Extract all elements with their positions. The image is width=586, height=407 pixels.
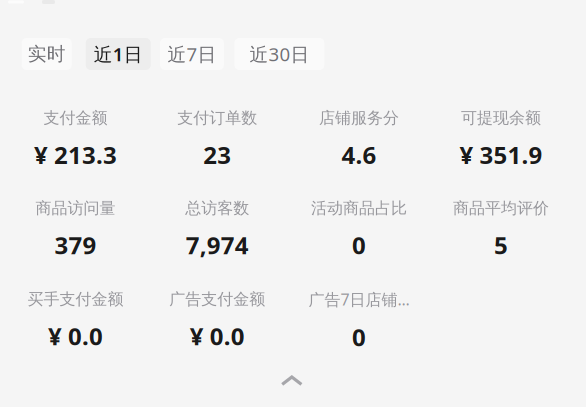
staticText: 实时	[28, 42, 66, 65]
button[interactable]: 商品平均评价	[430, 198, 572, 261]
staticText: 广告支付金额	[169, 289, 265, 309]
staticText: 商品平均评价	[453, 198, 549, 218]
staticText: ¥ 213.3	[34, 139, 117, 171]
button[interactable]: 买手支付金额	[5, 289, 146, 352]
button[interactable]: 商品访问量	[5, 198, 146, 261]
button[interactable]: 广告7日店铺...	[288, 289, 430, 353]
staticText: 近1日	[94, 42, 143, 66]
staticText: 0	[352, 321, 366, 353]
staticText: 商品访问量	[35, 198, 115, 218]
button[interactable]: 近1日	[86, 38, 151, 70]
staticText: 5	[494, 229, 508, 261]
staticText: 店铺服务分	[319, 108, 399, 128]
staticText: 买手支付金额	[27, 289, 123, 309]
button[interactable]: 支付金额	[5, 108, 146, 170]
staticText: 4.6	[342, 139, 377, 171]
staticText: 支付订单数	[177, 108, 257, 128]
button[interactable]: 支付订单数	[146, 108, 288, 170]
button[interactable]: Collapse	[272, 366, 312, 395]
button[interactable]: 店铺服务分	[288, 108, 430, 170]
staticText: 0	[352, 229, 366, 261]
staticText: 近30日	[249, 42, 309, 66]
button[interactable]: 总访客数	[146, 198, 288, 261]
staticText: 7,974	[186, 229, 249, 261]
button[interactable]: 活动商品占比	[288, 198, 430, 261]
staticText: 379	[54, 229, 96, 261]
staticText: ¥ 0.0	[48, 320, 103, 352]
staticText: 广告7日店铺...	[309, 289, 410, 310]
button[interactable]: 广告支付金额	[146, 289, 288, 352]
button[interactable]: 可提现余额	[430, 108, 572, 170]
staticText: 活动商品占比	[311, 198, 407, 218]
staticText: 可提现余额	[461, 108, 541, 128]
staticText: 近7日	[167, 42, 216, 66]
button[interactable]: 近7日	[160, 38, 224, 70]
staticText: 支付金额	[43, 108, 107, 128]
button[interactable]: 近30日	[234, 38, 324, 70]
button[interactable]: 实时	[22, 38, 72, 70]
staticText: ¥ 0.0	[190, 320, 245, 352]
staticText: ¥ 351.9	[459, 139, 542, 171]
staticText: 总访客数	[185, 198, 249, 218]
staticText: 23	[203, 139, 231, 171]
